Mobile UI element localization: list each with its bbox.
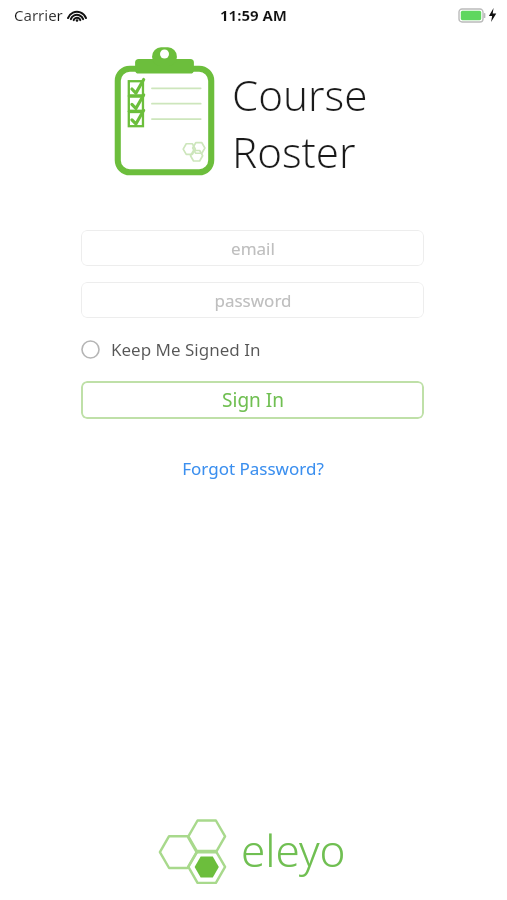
staticText: Forgot Password? [182,457,324,480]
staticText: 11:59 AM [220,5,287,25]
staticText: email [231,237,275,260]
button[interactable]: Sign In [81,381,424,419]
staticText: Course [232,66,368,123]
staticText: password [214,289,292,312]
staticText: eleyo [241,820,346,880]
button[interactable]: email [81,230,424,266]
button[interactable]: Keep Me Signed In [81,338,424,361]
button[interactable]: Forgot Password? [81,457,424,480]
staticText: Sign In [222,387,284,413]
button[interactable]: password [81,282,424,318]
staticText: Keep Me Signed In [111,338,261,361]
staticText: Carrier [14,5,63,25]
staticText: Roster [232,123,356,180]
